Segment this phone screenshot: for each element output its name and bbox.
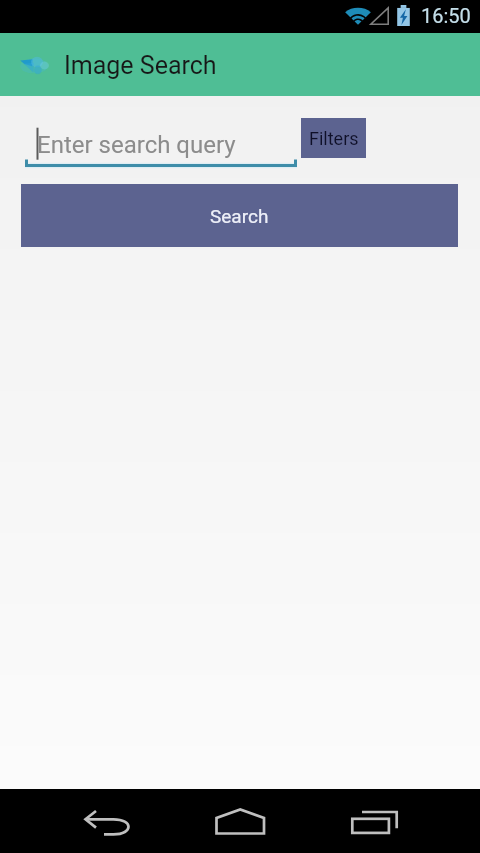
button[interactable]: Recents <box>340 789 412 853</box>
button[interactable]: Search <box>21 184 458 247</box>
button[interactable]: Back <box>71 789 143 853</box>
staticText: Enter search query <box>37 131 236 159</box>
button[interactable]: Home <box>204 789 276 853</box>
button[interactable]: Enter search query <box>25 121 297 167</box>
staticText: Search <box>210 205 269 227</box>
staticText: 16:50 <box>421 4 471 27</box>
staticText: Image Search <box>64 51 217 80</box>
button[interactable]: Filters <box>301 118 366 158</box>
staticText: Filters <box>309 128 359 149</box>
